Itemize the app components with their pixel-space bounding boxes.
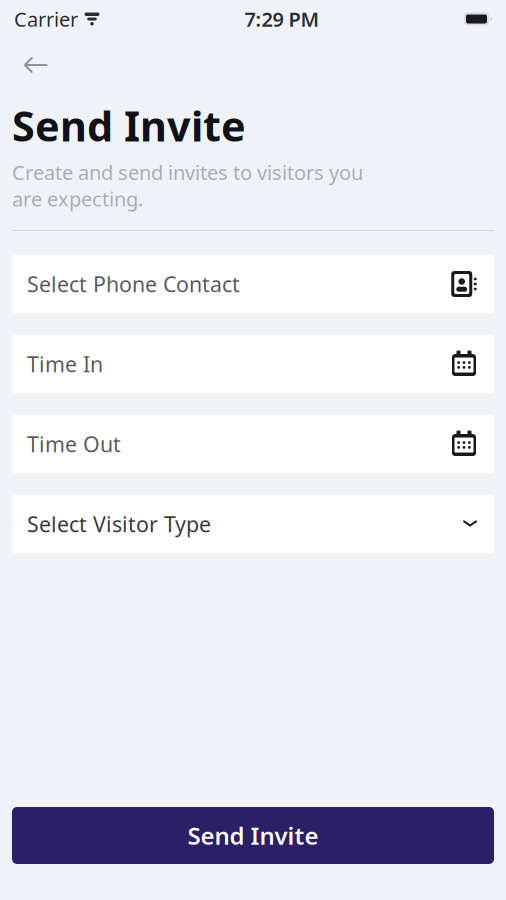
staticText: 7:29 PM bbox=[244, 6, 319, 32]
button[interactable]: Send Invite bbox=[12, 807, 494, 864]
button[interactable]: Back bbox=[14, 48, 58, 82]
staticText: Send Invite bbox=[12, 98, 246, 153]
staticText: Create and send invites to visitors you … bbox=[12, 159, 363, 212]
button[interactable]: Time in bbox=[12, 335, 494, 393]
staticText: Select Visitor Type bbox=[27, 510, 211, 538]
button[interactable]: Time out bbox=[12, 415, 494, 473]
staticText: Carrier bbox=[14, 6, 78, 32]
staticText: Time Out bbox=[27, 430, 121, 458]
staticText: Select Phone Contact bbox=[27, 270, 240, 298]
staticText: Send Invite bbox=[187, 820, 318, 851]
button[interactable]: Select phone contact bbox=[12, 255, 494, 313]
staticText: Time In bbox=[27, 350, 103, 378]
button[interactable]: Select visitor type bbox=[12, 495, 494, 553]
